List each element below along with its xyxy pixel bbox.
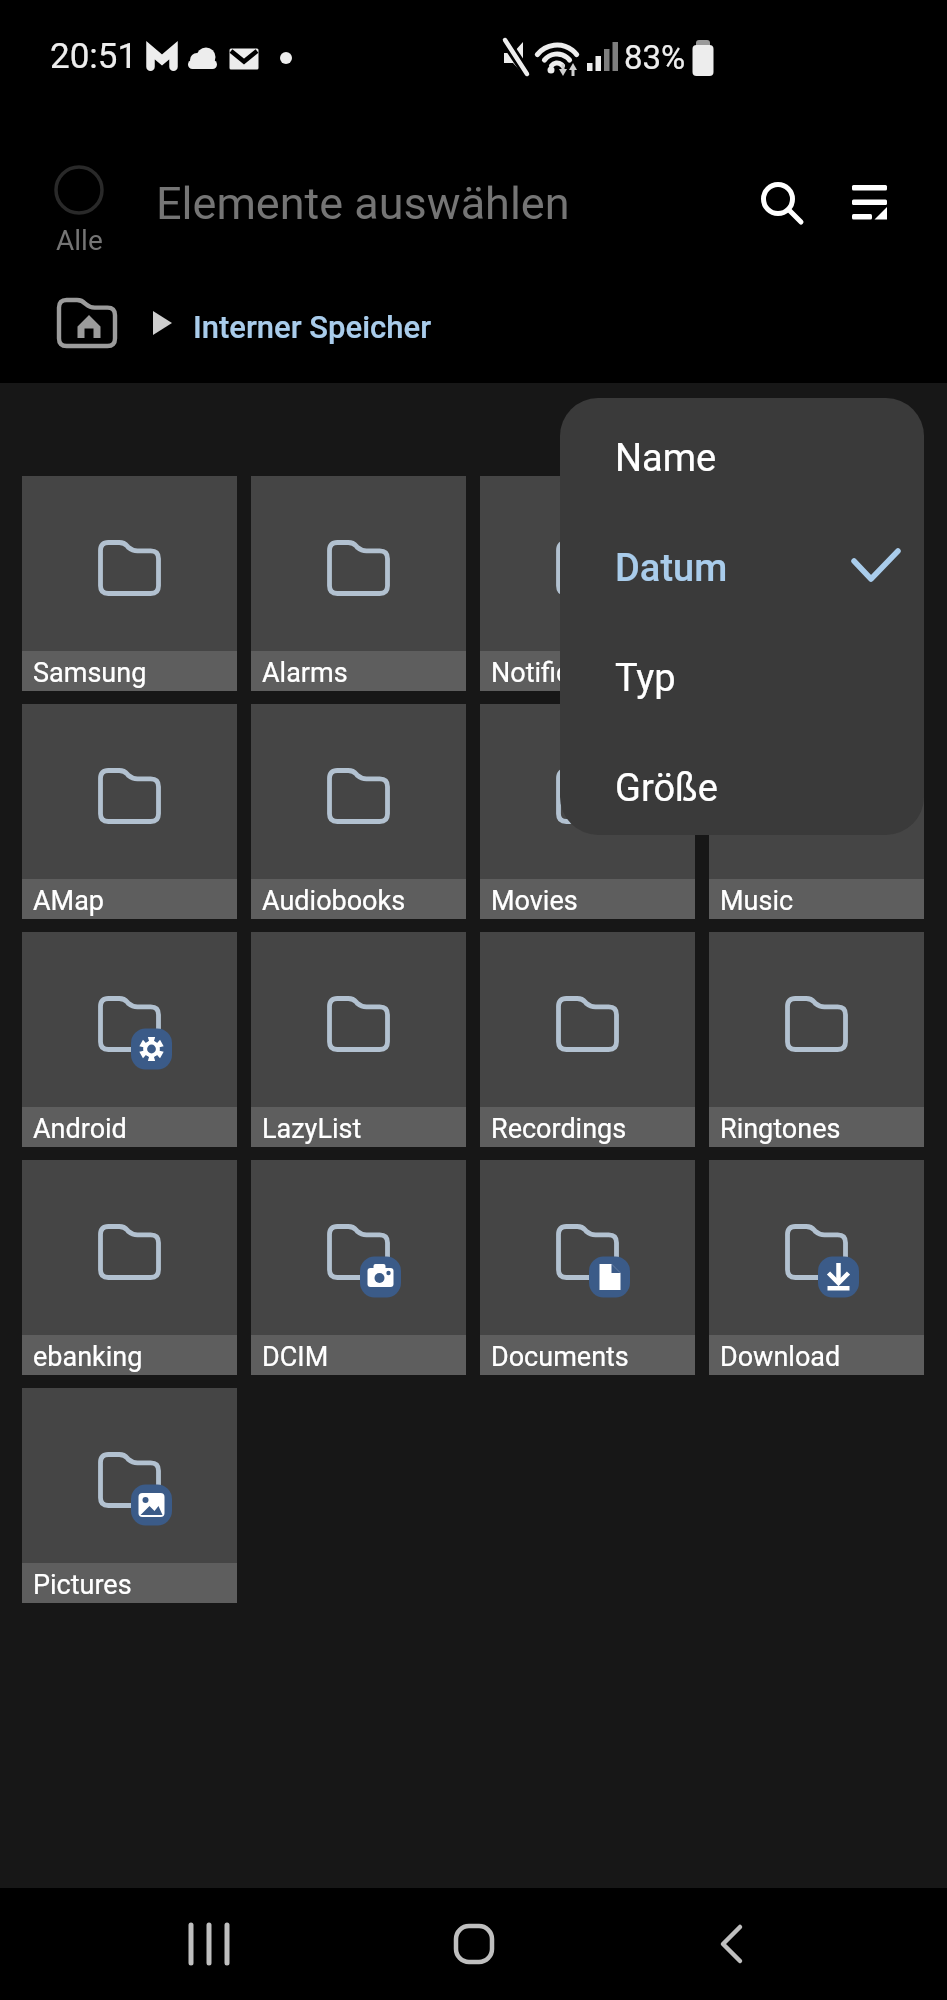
staticText: Datum [615,546,728,591]
button[interactable]: Documents [480,1160,695,1375]
button[interactable]: Name [560,403,924,513]
staticText: Alarms [262,657,348,689]
button[interactable]: DCIM [251,1160,466,1375]
button[interactable]: ebanking [22,1160,237,1375]
staticText: Größe [615,766,718,811]
button[interactable]: Home [418,1888,530,2000]
staticText: Name [615,436,717,481]
button[interactable]: Pictures2 [709,476,924,691]
staticText: 20:51 [50,36,138,77]
button[interactable]: AMap [22,704,237,919]
button[interactable]: Typ [560,623,924,733]
button[interactable]: Alarms [251,476,466,691]
button[interactable]: Alle [34,165,124,257]
button[interactable]: Recent apps [153,1888,265,2000]
button[interactable]: Music [709,704,924,919]
button[interactable]: Recordings [480,932,695,1147]
button[interactable]: Android [22,932,237,1147]
staticText: 83% [624,38,686,77]
button[interactable]: Größe [560,733,924,835]
button[interactable]: Movies [480,704,695,919]
button[interactable]: Back [677,1888,789,2000]
button[interactable]: Download [709,1160,924,1375]
staticText: AMap [33,885,105,917]
button[interactable]: Sort order [826,159,918,251]
button[interactable]: Samsung [22,476,237,691]
button[interactable]: LazyList [251,932,466,1147]
staticText: Movies [491,885,578,917]
button[interactable]: Ringtones [709,932,924,1147]
staticText: ebanking [33,1341,143,1373]
staticText: LazyList [262,1113,362,1145]
staticText: Download [720,1341,841,1373]
button[interactable]: Pictures [22,1388,237,1603]
staticText: Recordings [491,1113,627,1145]
staticText: Music [720,885,794,917]
staticText: Ringtones [720,1113,841,1145]
staticText: Typ [615,656,676,701]
staticText: Pictures [33,1569,132,1601]
button[interactable]: Notifications [480,476,695,691]
button[interactable]: Datum [560,513,924,623]
staticText: Android [33,1113,127,1145]
button[interactable]: Audiobooks [251,704,466,919]
button[interactable]: Search [740,160,832,252]
button[interactable]: Interner Speicher [193,309,432,345]
staticText: Samsung [33,657,147,689]
staticText: Alle [56,224,103,257]
staticText: DCIM [262,1341,329,1373]
staticText: Elemente auswählen [156,177,570,230]
staticText: Audiobooks [262,885,406,917]
staticText: Documents [491,1341,629,1373]
staticText: Notifications [491,657,645,689]
button[interactable]: Root folder [58,298,118,358]
